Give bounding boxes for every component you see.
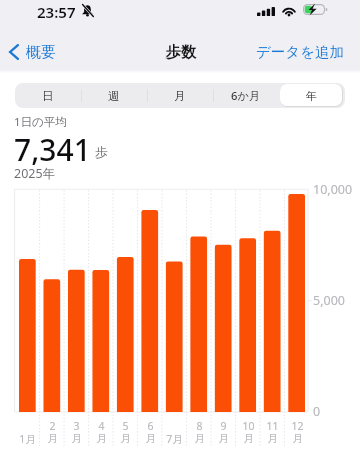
staticText: 歩 <box>95 144 108 160</box>
staticText: 9 <box>220 419 227 433</box>
staticText: 8 <box>196 419 203 433</box>
button[interactable]: 6か月 <box>213 83 279 108</box>
staticText: 2025年 <box>14 165 56 182</box>
staticText: 2 <box>49 419 56 433</box>
staticText: 10 <box>242 419 255 433</box>
staticText: 月 <box>267 432 278 445</box>
staticText: 7月 <box>166 432 183 446</box>
button[interactable]: 概要 <box>5 38 61 64</box>
staticText: 月 <box>292 432 303 445</box>
button[interactable]: 日 <box>15 83 81 108</box>
staticText: 月 <box>120 432 131 445</box>
staticText: 5 <box>122 419 129 433</box>
button[interactable]: 月 <box>147 83 213 108</box>
staticText: 11 <box>266 419 279 433</box>
staticText: 月 <box>174 89 186 103</box>
other: Silent mode <box>81 4 94 17</box>
staticText: 歩数 <box>166 43 196 62</box>
staticText: 23:57 <box>37 2 76 22</box>
staticText: 月 <box>71 432 82 445</box>
button[interactable]: データを追加 <box>252 38 348 64</box>
staticText: 概要 <box>26 43 56 62</box>
staticText: 10,000 <box>313 181 353 198</box>
staticText: 7,341 <box>14 129 91 170</box>
staticText: 0 <box>313 403 321 420</box>
button[interactable]: 週 <box>81 83 147 108</box>
staticText: 5,000 <box>313 292 345 309</box>
staticText: 月 <box>218 432 229 445</box>
staticText: 12 <box>291 419 304 433</box>
button[interactable]: 年 <box>279 83 345 108</box>
staticText: 4 <box>98 419 105 433</box>
staticText: 3 <box>73 419 80 433</box>
staticText: 月 <box>194 432 205 445</box>
staticText: 6 <box>147 419 154 433</box>
staticText: 月 <box>96 432 107 445</box>
staticText: 日 <box>42 89 54 103</box>
staticText: 月 <box>243 432 254 445</box>
staticText: 6か月 <box>231 88 261 103</box>
staticText: 月 <box>145 432 156 445</box>
staticText: 月 <box>47 432 58 445</box>
staticText: 1月 <box>19 432 36 446</box>
staticText: 1日の平均 <box>14 114 67 130</box>
staticText: 年 <box>306 89 318 103</box>
staticText: データを追加 <box>256 43 345 61</box>
staticText: 週 <box>108 89 120 103</box>
